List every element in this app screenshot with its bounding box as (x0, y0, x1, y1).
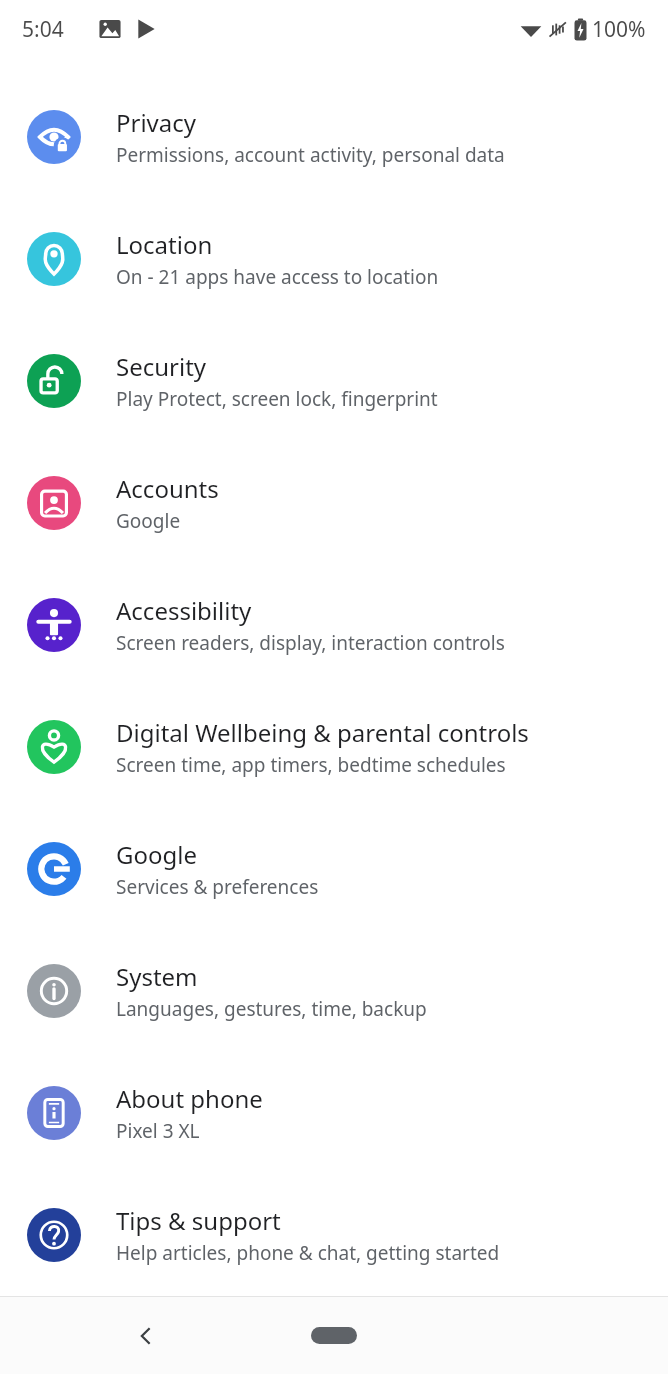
staticText: Help articles, phone & chat, getting sta… (116, 1240, 500, 1266)
button[interactable]: System (0, 930, 668, 1052)
staticText: Google (116, 838, 197, 871)
staticText: On - 21 apps have access to location (116, 264, 439, 290)
staticText: Permissions, account activity, personal … (116, 142, 505, 168)
staticText: Tips & support (116, 1204, 281, 1237)
staticText: About phone (116, 1082, 263, 1115)
button[interactable]: Back (118, 1308, 174, 1364)
staticText: 5:04 (22, 15, 64, 44)
button[interactable]: About phone (0, 1052, 668, 1174)
button[interactable]: Tips & support (0, 1174, 668, 1296)
staticText: Digital Wellbeing & parental controls (116, 716, 529, 749)
staticText: Services & preferences (116, 874, 319, 900)
staticText: Security (116, 350, 207, 383)
staticText: Accessibility (116, 594, 252, 627)
staticText: Location (116, 228, 213, 261)
staticText: 100% (592, 15, 646, 44)
staticText: Languages, gestures, time, backup (116, 996, 427, 1022)
staticText: Accounts (116, 472, 219, 505)
button[interactable]: Privacy (0, 76, 668, 198)
staticText: Screen readers, display, interaction con… (116, 630, 505, 656)
staticText: Screen time, app timers, bedtime schedul… (116, 752, 506, 778)
staticText: Privacy (116, 106, 197, 139)
button[interactable]: Accessibility (0, 564, 668, 686)
button[interactable]: Security (0, 320, 668, 442)
button[interactable]: Location (0, 198, 668, 320)
button[interactable]: Accounts (0, 442, 668, 564)
staticText: System (116, 960, 198, 993)
staticText: Pixel 3 XL (116, 1118, 200, 1144)
staticText: Google (116, 508, 181, 534)
button[interactable]: Digital Wellbeing & parental controls (0, 686, 668, 808)
staticText: Play Protect, screen lock, fingerprint (116, 386, 438, 412)
button[interactable]: Home (311, 1327, 357, 1344)
button[interactable]: Google (0, 808, 668, 930)
